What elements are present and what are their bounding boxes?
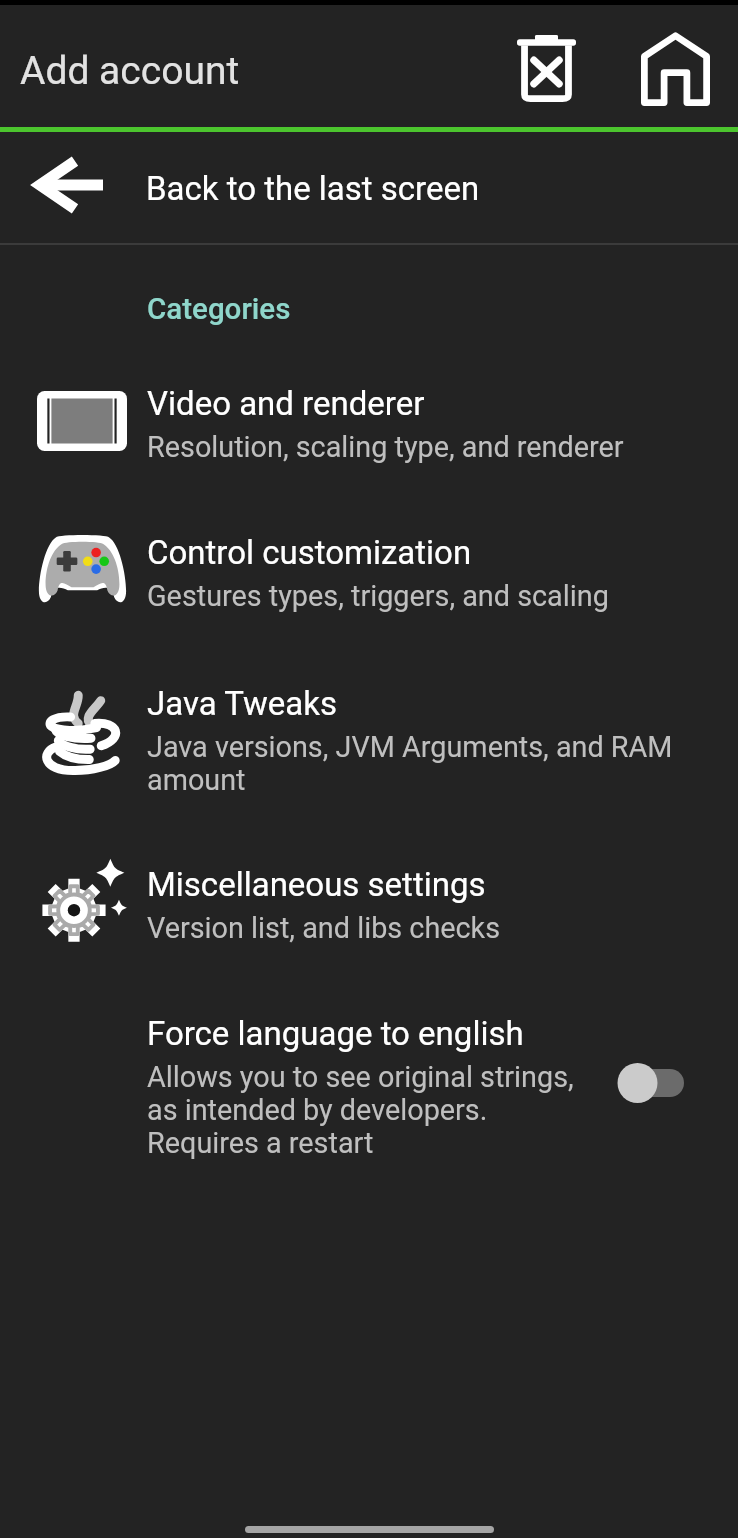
- staticText: Version list, and libs checks: [147, 911, 501, 944]
- button[interactable]: Home: [627, 21, 723, 117]
- staticText: Java Tweaks: [147, 684, 337, 723]
- staticText: Gestures types, triggers, and scaling: [147, 579, 609, 612]
- staticText: Miscellaneous settings: [147, 865, 486, 904]
- button[interactable]: Video and renderer: [0, 362, 738, 502]
- staticText: Add account: [20, 48, 240, 94]
- staticText: Categories: [147, 292, 291, 327]
- button[interactable]: Miscellaneous settings: [0, 843, 738, 983]
- other: Back: [33, 153, 103, 217]
- button[interactable]: Delete: [498, 20, 594, 116]
- staticText: Java versions, JVM Arguments, and RAM am…: [147, 730, 673, 796]
- staticText: Allows you to see original strings, as i…: [147, 1060, 574, 1159]
- button[interactable]: Force language to english: [0, 1008, 738, 1158]
- staticText: Control customization: [147, 533, 472, 572]
- staticText: Video and renderer: [147, 384, 425, 423]
- staticText: Back to the last screen: [146, 169, 480, 208]
- button[interactable]: Force language to english toggle: [601, 1051, 699, 1115]
- button[interactable]: Control customization: [0, 511, 738, 651]
- button[interactable]: Back: [0, 132, 738, 243]
- staticText: Force language to english: [147, 1014, 524, 1053]
- staticText: Resolution, scaling type, and renderer: [147, 430, 624, 463]
- button[interactable]: Java Tweaks: [0, 662, 738, 834]
